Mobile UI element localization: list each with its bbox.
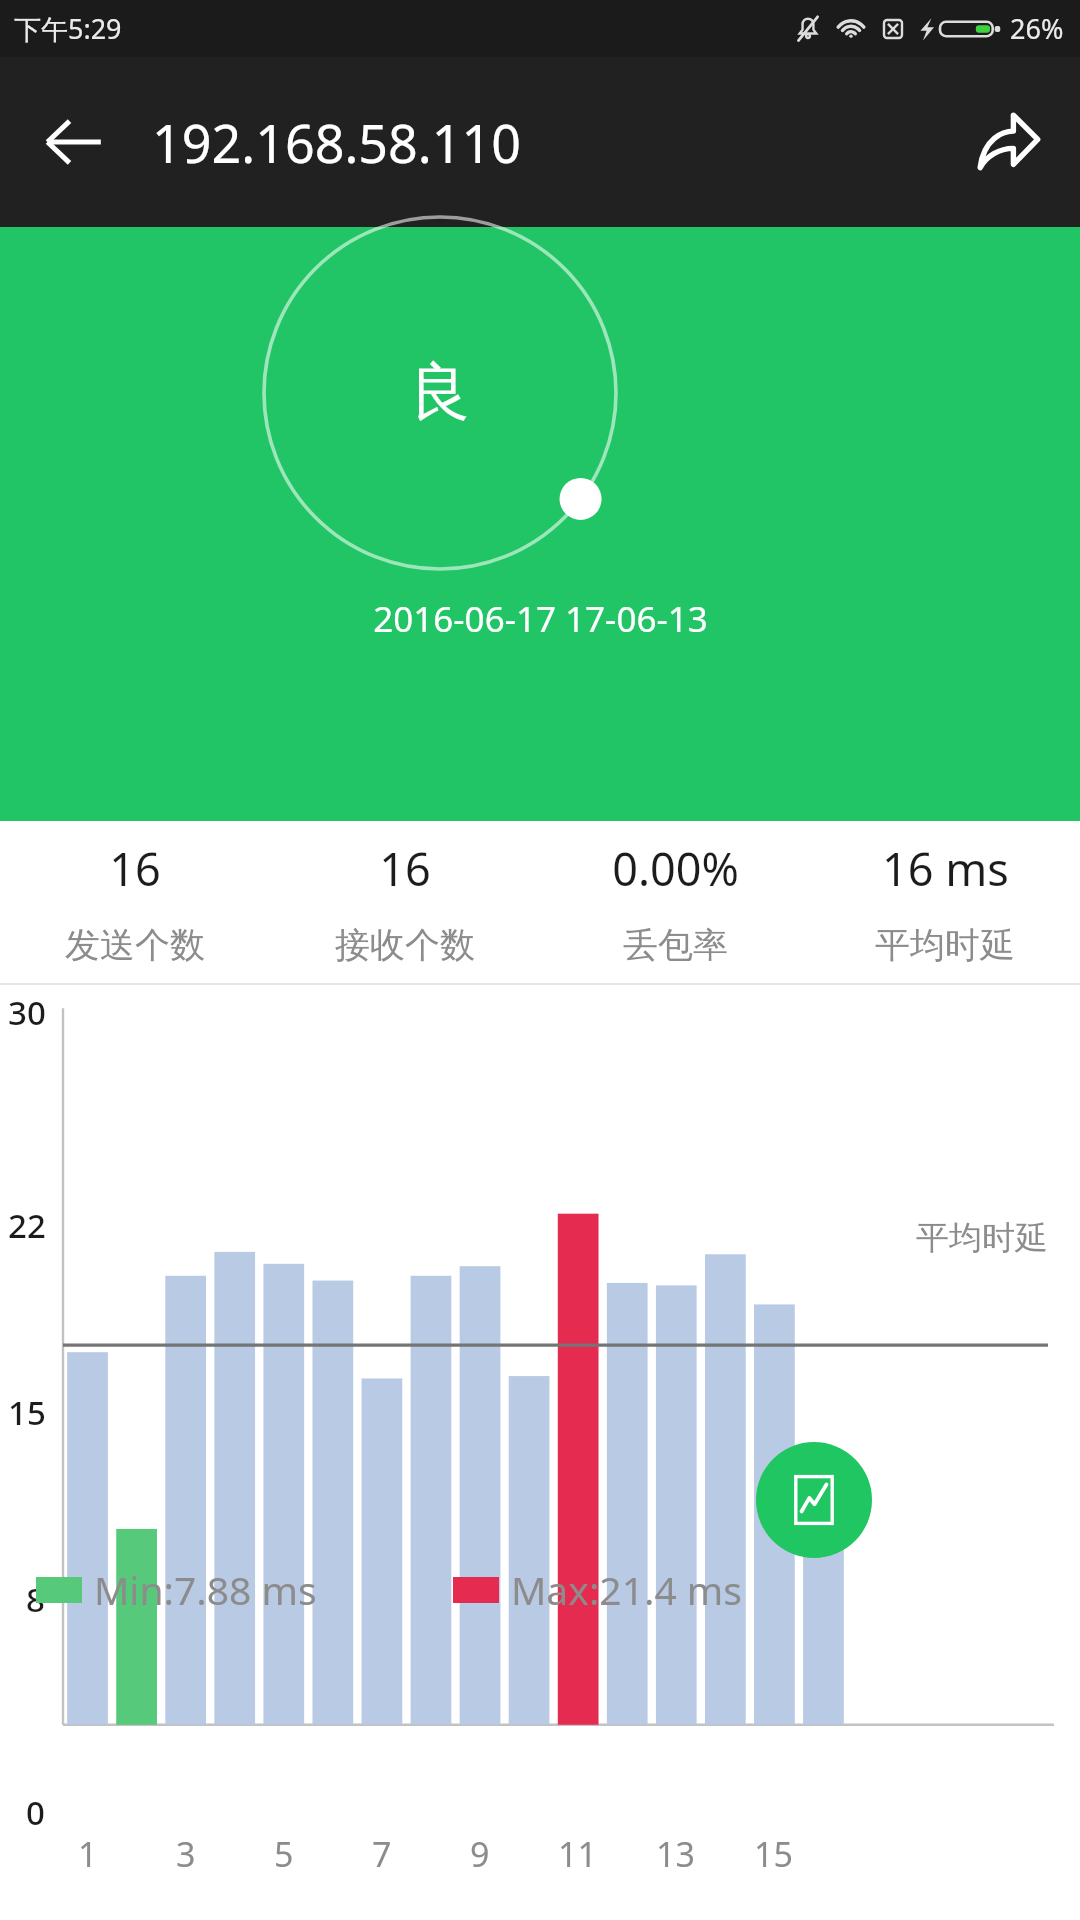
- staticText: 8: [26, 1577, 45, 1622]
- staticText: 22: [8, 1203, 46, 1248]
- staticText: 13: [656, 1831, 695, 1877]
- button[interactable]: 16 ms: [810, 821, 1080, 983]
- staticText: 15: [754, 1831, 793, 1877]
- staticText: 9: [470, 1831, 490, 1877]
- staticText: 1: [78, 1831, 98, 1877]
- staticText: 16: [109, 838, 161, 899]
- button[interactable]: Max:21.4 ms: [453, 1563, 742, 1616]
- staticText: 16 ms: [882, 838, 1009, 899]
- staticText: 15: [8, 1390, 46, 1435]
- staticText: 26%: [1010, 10, 1064, 47]
- button[interactable]: Min:7.88 ms: [36, 1563, 317, 1616]
- button[interactable]: Back: [26, 95, 120, 189]
- button[interactable]: Share: [960, 95, 1054, 189]
- staticText: Max:21.4 ms: [511, 1563, 742, 1616]
- button[interactable]: 0.00%: [540, 821, 810, 983]
- staticText: 16: [379, 838, 431, 899]
- staticText: 2016-06-17 17-06-13: [373, 595, 708, 643]
- staticText: 30: [8, 990, 46, 1035]
- staticText: 7: [372, 1831, 392, 1877]
- staticText: 11: [558, 1831, 597, 1877]
- staticText: 发送个数: [65, 923, 205, 967]
- button[interactable]: 16: [0, 821, 270, 983]
- staticText: 3: [176, 1831, 196, 1877]
- staticText: 192.168.58.110: [152, 107, 521, 178]
- staticText: 平均时延: [875, 923, 1015, 967]
- staticText: 0.00%: [612, 838, 739, 899]
- staticText: Min:7.88 ms: [94, 1563, 317, 1616]
- staticText: 良: [409, 353, 471, 431]
- staticText: 0: [26, 1790, 45, 1835]
- staticText: 平均时延: [916, 1217, 1048, 1259]
- staticText: 丢包率: [623, 923, 728, 967]
- staticText: 下午5:29: [14, 10, 122, 47]
- button[interactable]: 16: [270, 821, 540, 983]
- staticText: 5: [274, 1831, 294, 1877]
- staticText: 接收个数: [335, 923, 475, 967]
- button[interactable]: Show chart: [756, 1442, 872, 1558]
